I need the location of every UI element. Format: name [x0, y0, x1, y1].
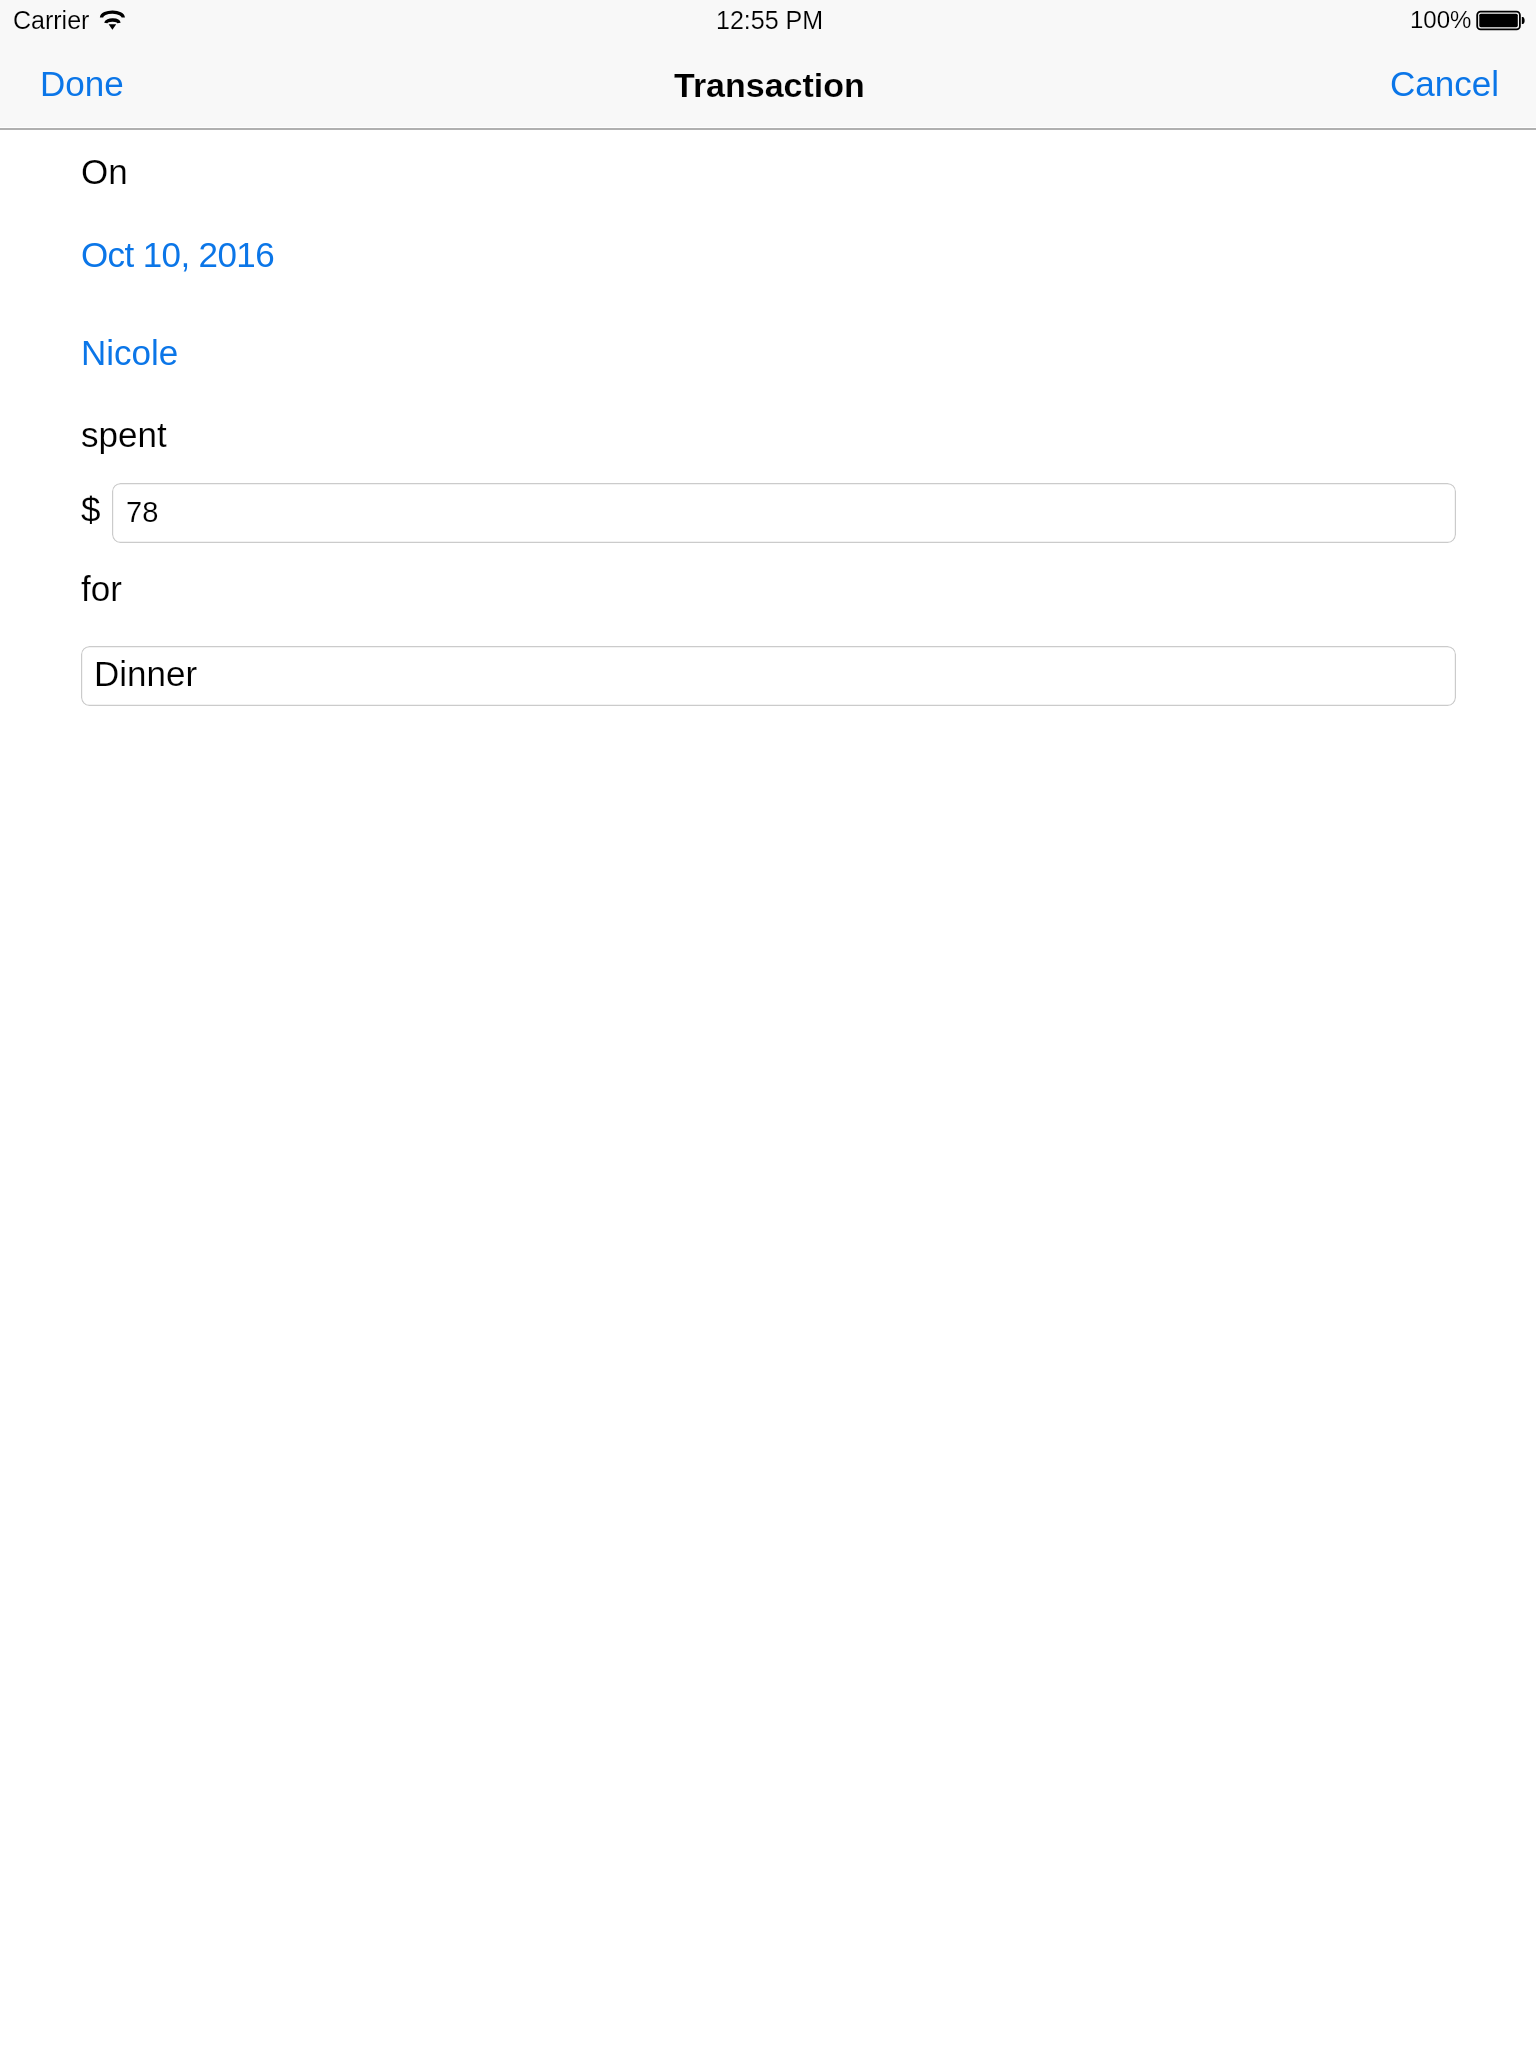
staticText: 100%: [1410, 6, 1472, 33]
other: Battery full: [1474, 9, 1528, 33]
button[interactable]: Done: [20, 52, 150, 108]
button[interactable]: Nicole: [76, 329, 188, 377]
staticText: Nicole: [81, 333, 179, 372]
button[interactable]: 78: [112, 483, 1456, 543]
staticText: for: [81, 569, 122, 608]
staticText: 12:55 PM: [716, 6, 824, 34]
staticText: Transaction: [674, 66, 865, 104]
button[interactable]: Dinner: [81, 646, 1456, 706]
staticText: Done: [40, 64, 124, 103]
staticText: spent: [81, 415, 167, 454]
staticText: 78: [126, 496, 159, 528]
staticText: Dinner: [94, 654, 198, 693]
button[interactable]: Oct 10, 2016: [76, 232, 292, 280]
other: Wi-Fi signal: [99, 10, 126, 31]
staticText: $: [81, 490, 101, 529]
staticText: Carrier: [13, 6, 90, 34]
button[interactable]: Cancel: [1370, 52, 1516, 108]
staticText: Cancel: [1390, 64, 1499, 103]
staticText: On: [81, 152, 128, 191]
staticText: Oct 10, 2016: [81, 235, 274, 274]
